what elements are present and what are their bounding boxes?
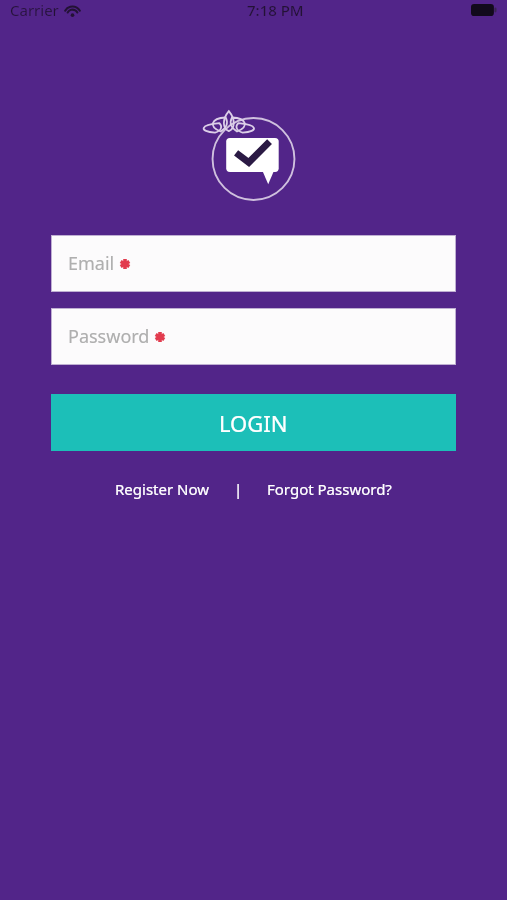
button[interactable]: Email <box>51 235 456 292</box>
staticText: Forgot Password? <box>267 479 392 499</box>
staticText: | <box>234 479 243 499</box>
button[interactable]: Register Now <box>109 473 216 505</box>
staticText: Password <box>68 324 150 349</box>
button[interactable]: Password <box>51 308 456 365</box>
staticText: Carrier <box>10 0 59 20</box>
button[interactable]: LOGIN <box>51 394 456 451</box>
staticText: Email <box>68 251 115 276</box>
other: Battery full <box>471 4 497 16</box>
other: Wi-Fi signal <box>64 4 81 17</box>
other: App logo <box>201 105 306 205</box>
button[interactable]: Forgot Password? <box>261 473 398 505</box>
staticText: LOGIN <box>219 408 288 438</box>
staticText: 7:18 PM <box>247 0 304 20</box>
staticText: Register Now <box>115 479 210 499</box>
